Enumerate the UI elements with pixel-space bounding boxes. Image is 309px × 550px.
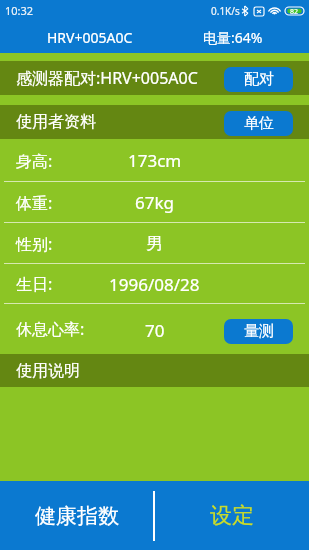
- staticText: 生日:: [16, 273, 53, 295]
- staticText: HRV+005A0C: [47, 28, 133, 47]
- button[interactable]: 量测: [224, 319, 293, 344]
- staticText: 173cm: [128, 149, 182, 172]
- staticText: 配对: [244, 70, 274, 89]
- staticText: 70: [145, 319, 165, 342]
- staticText: 使用者资料: [16, 112, 96, 132]
- button[interactable]: 健康指数: [0, 481, 153, 550]
- button[interactable]: 体重:: [0, 182, 309, 223]
- staticText: 电量:64%: [203, 28, 263, 47]
- staticText: 使用说明: [16, 361, 80, 381]
- button[interactable]: 身高:: [0, 139, 309, 182]
- button[interactable]: 生日:: [0, 264, 309, 304]
- staticText: 设定: [210, 502, 254, 530]
- staticText: 0.1K/s: [211, 4, 240, 18]
- staticText: 身高:: [16, 150, 53, 172]
- staticText: 休息心率:: [16, 318, 85, 340]
- button[interactable]: 设定: [155, 481, 309, 550]
- staticText: 体重:: [16, 192, 53, 214]
- staticText: 男: [146, 233, 163, 254]
- staticText: 感测器配对:HRV+005A0C: [16, 67, 198, 89]
- staticText: 67kg: [135, 191, 174, 214]
- staticText: 1996/08/28: [109, 273, 200, 296]
- staticText: 单位: [244, 114, 274, 133]
- staticText: 82: [290, 7, 299, 15]
- button[interactable]: 使用说明: [0, 354, 309, 387]
- staticText: 性别:: [16, 233, 53, 255]
- button[interactable]: 单位: [224, 111, 293, 136]
- staticText: 10:32: [5, 3, 34, 18]
- staticText: 健康指数: [35, 503, 119, 529]
- staticText: 量测: [244, 322, 274, 341]
- button[interactable]: 性别:: [0, 223, 309, 264]
- button[interactable]: 配对: [224, 67, 293, 92]
- button[interactable]: 休息心率:: [0, 304, 309, 354]
